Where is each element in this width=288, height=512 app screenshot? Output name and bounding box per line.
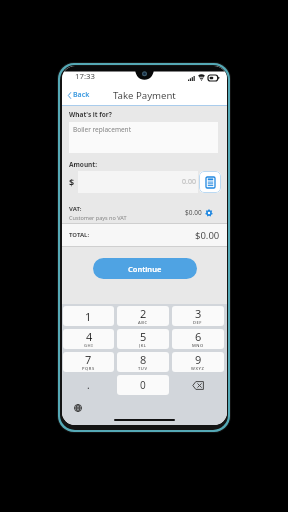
button[interactable]: 7 <box>63 352 114 372</box>
staticText: 3 <box>195 306 202 321</box>
button[interactable]: VAT settings <box>205 209 213 217</box>
staticText: $ <box>69 176 75 188</box>
staticText: Boiler replacement <box>73 125 131 134</box>
button[interactable]: 6 <box>172 329 224 349</box>
staticText: 0 <box>140 378 146 392</box>
staticText: Amount: <box>69 160 97 169</box>
button[interactable]: Back <box>62 87 95 103</box>
staticText: 7 <box>85 352 92 367</box>
staticText: GHI <box>84 343 94 348</box>
staticText: Customer pays no VAT <box>69 214 127 221</box>
staticText: . <box>87 378 90 392</box>
staticText: PQRS <box>82 366 95 371</box>
staticText: $0.00 <box>195 229 220 242</box>
button[interactable]: 2 <box>117 306 169 326</box>
button[interactable]: 3 <box>172 306 224 326</box>
staticText: TUV <box>138 366 148 371</box>
staticText: ABC <box>138 320 148 325</box>
staticText: Continue <box>128 264 162 274</box>
staticText: 8 <box>140 352 147 367</box>
staticText: 0.00 <box>182 177 196 187</box>
staticText: 1 <box>85 309 92 324</box>
staticText: 17:33 <box>75 71 95 82</box>
staticText: 4 <box>86 329 93 344</box>
staticText: VAT: <box>69 205 82 213</box>
button[interactable]: 5 <box>117 329 169 349</box>
staticText: MNO <box>192 343 204 348</box>
staticText: Back <box>73 90 90 100</box>
staticText: DEF <box>193 320 203 325</box>
staticText: JKL <box>139 343 147 348</box>
button[interactable]: Backspace <box>172 375 224 395</box>
staticText: WXYZ <box>191 366 205 371</box>
button[interactable]: Continue <box>93 258 197 279</box>
staticText: TOTAL: <box>69 231 90 239</box>
button[interactable]: 4 <box>63 329 114 349</box>
staticText: Take Payment <box>113 89 176 102</box>
staticText: 2 <box>140 306 147 321</box>
staticText: 6 <box>195 329 202 344</box>
button[interactable]: 0 <box>117 375 169 395</box>
staticText: 5 <box>140 329 147 344</box>
staticText: 9 <box>195 352 202 367</box>
button[interactable]: 8 <box>117 352 169 372</box>
button[interactable]: 9 <box>172 352 224 372</box>
button[interactable]: Decimal point <box>63 375 114 395</box>
button[interactable]: 1 <box>63 306 114 326</box>
staticText: What's it for? <box>69 110 112 119</box>
button[interactable]: Calculator <box>199 171 221 193</box>
staticText: $0.00 <box>185 208 202 217</box>
button[interactable]: Change keyboard <box>74 404 82 412</box>
